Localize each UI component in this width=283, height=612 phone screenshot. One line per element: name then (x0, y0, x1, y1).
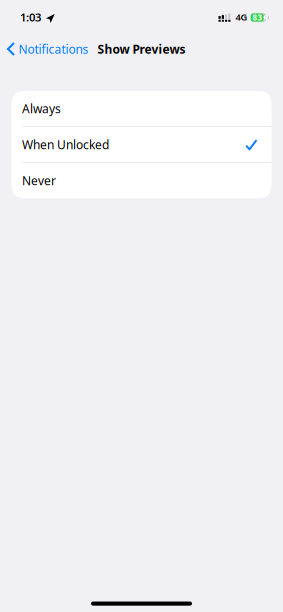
staticText: 4G (235, 11, 247, 23)
staticText: When Unlocked (22, 136, 109, 153)
button[interactable]: When Unlocked (11, 127, 271, 162)
staticText: 1:03 (20, 9, 41, 25)
staticText: Show Previews (98, 41, 186, 57)
staticText: Notifications (19, 41, 89, 57)
button[interactable]: Always (11, 91, 271, 126)
staticText: Always (22, 100, 61, 117)
button[interactable]: Never (11, 163, 271, 198)
staticText: 83 (252, 12, 262, 23)
staticText: Never (22, 172, 56, 189)
button[interactable]: Notifications (0, 38, 92, 60)
